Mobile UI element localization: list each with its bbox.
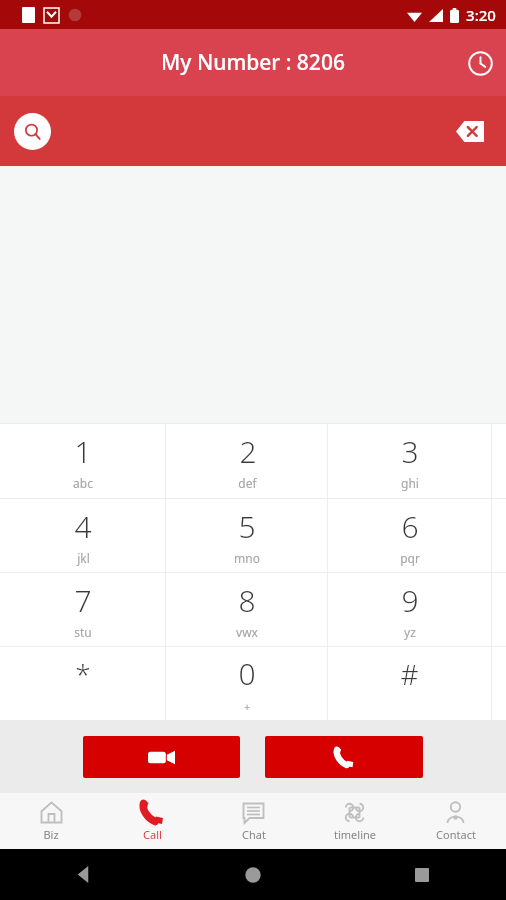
staticText: Chat <box>242 827 266 842</box>
staticText: 5 <box>238 506 256 547</box>
staticText: 6 <box>401 506 419 547</box>
button[interactable]: * <box>0 647 166 720</box>
button[interactable]: Call <box>102 793 203 849</box>
staticText: 0 <box>238 653 256 694</box>
button[interactable]: Search <box>14 113 51 150</box>
button[interactable]: timeline <box>304 793 405 849</box>
button[interactable]: Contact <box>405 793 506 849</box>
button[interactable]: 6 <box>328 499 491 572</box>
staticText: My Number : 8206 <box>161 48 345 77</box>
staticText: def <box>238 475 257 491</box>
button[interactable]: 5 <box>166 499 328 572</box>
staticText: Contact <box>436 827 476 842</box>
button[interactable]: 4 <box>0 499 166 572</box>
staticText: abc <box>73 475 93 491</box>
staticText: Biz <box>43 827 59 842</box>
staticText: timeline <box>334 827 376 842</box>
staticText: yz <box>404 624 416 640</box>
staticText: mno <box>234 550 260 566</box>
button[interactable]: 2 <box>166 424 328 498</box>
button[interactable]: Video call <box>83 736 240 778</box>
button[interactable]: 3 <box>328 424 491 498</box>
staticText: 1 <box>74 431 92 472</box>
staticText: 2 <box>239 431 257 472</box>
button[interactable]: Backspace <box>446 107 494 155</box>
button[interactable]: 7 <box>0 573 166 646</box>
staticText: # <box>400 655 419 693</box>
staticText: 8 <box>238 580 256 621</box>
button[interactable]: Call history <box>454 37 506 89</box>
staticText: 3:20 <box>466 5 496 25</box>
button[interactable]: # <box>328 647 491 720</box>
staticText: ghi <box>401 475 419 491</box>
staticText: pqr <box>400 550 420 566</box>
staticText: 9 <box>401 580 419 621</box>
staticText: jkl <box>77 550 90 566</box>
staticText: 7 <box>74 580 92 621</box>
staticText: * <box>75 655 91 693</box>
staticText: 3 <box>401 431 419 472</box>
staticText: 4 <box>74 506 92 547</box>
button[interactable]: Chat <box>203 793 304 849</box>
staticText: + <box>244 700 250 714</box>
button[interactable]: 8 <box>166 573 328 646</box>
button[interactable]: Biz <box>0 793 102 849</box>
button[interactable]: Call <box>265 736 423 778</box>
button[interactable]: Search <box>0 96 506 166</box>
button[interactable]: 9 <box>328 573 491 646</box>
button[interactable]: 1 <box>0 424 166 498</box>
staticText: vwx <box>236 624 258 640</box>
button[interactable]: 0 <box>166 647 328 720</box>
staticText: Call <box>143 827 162 842</box>
staticText: stu <box>74 624 92 640</box>
